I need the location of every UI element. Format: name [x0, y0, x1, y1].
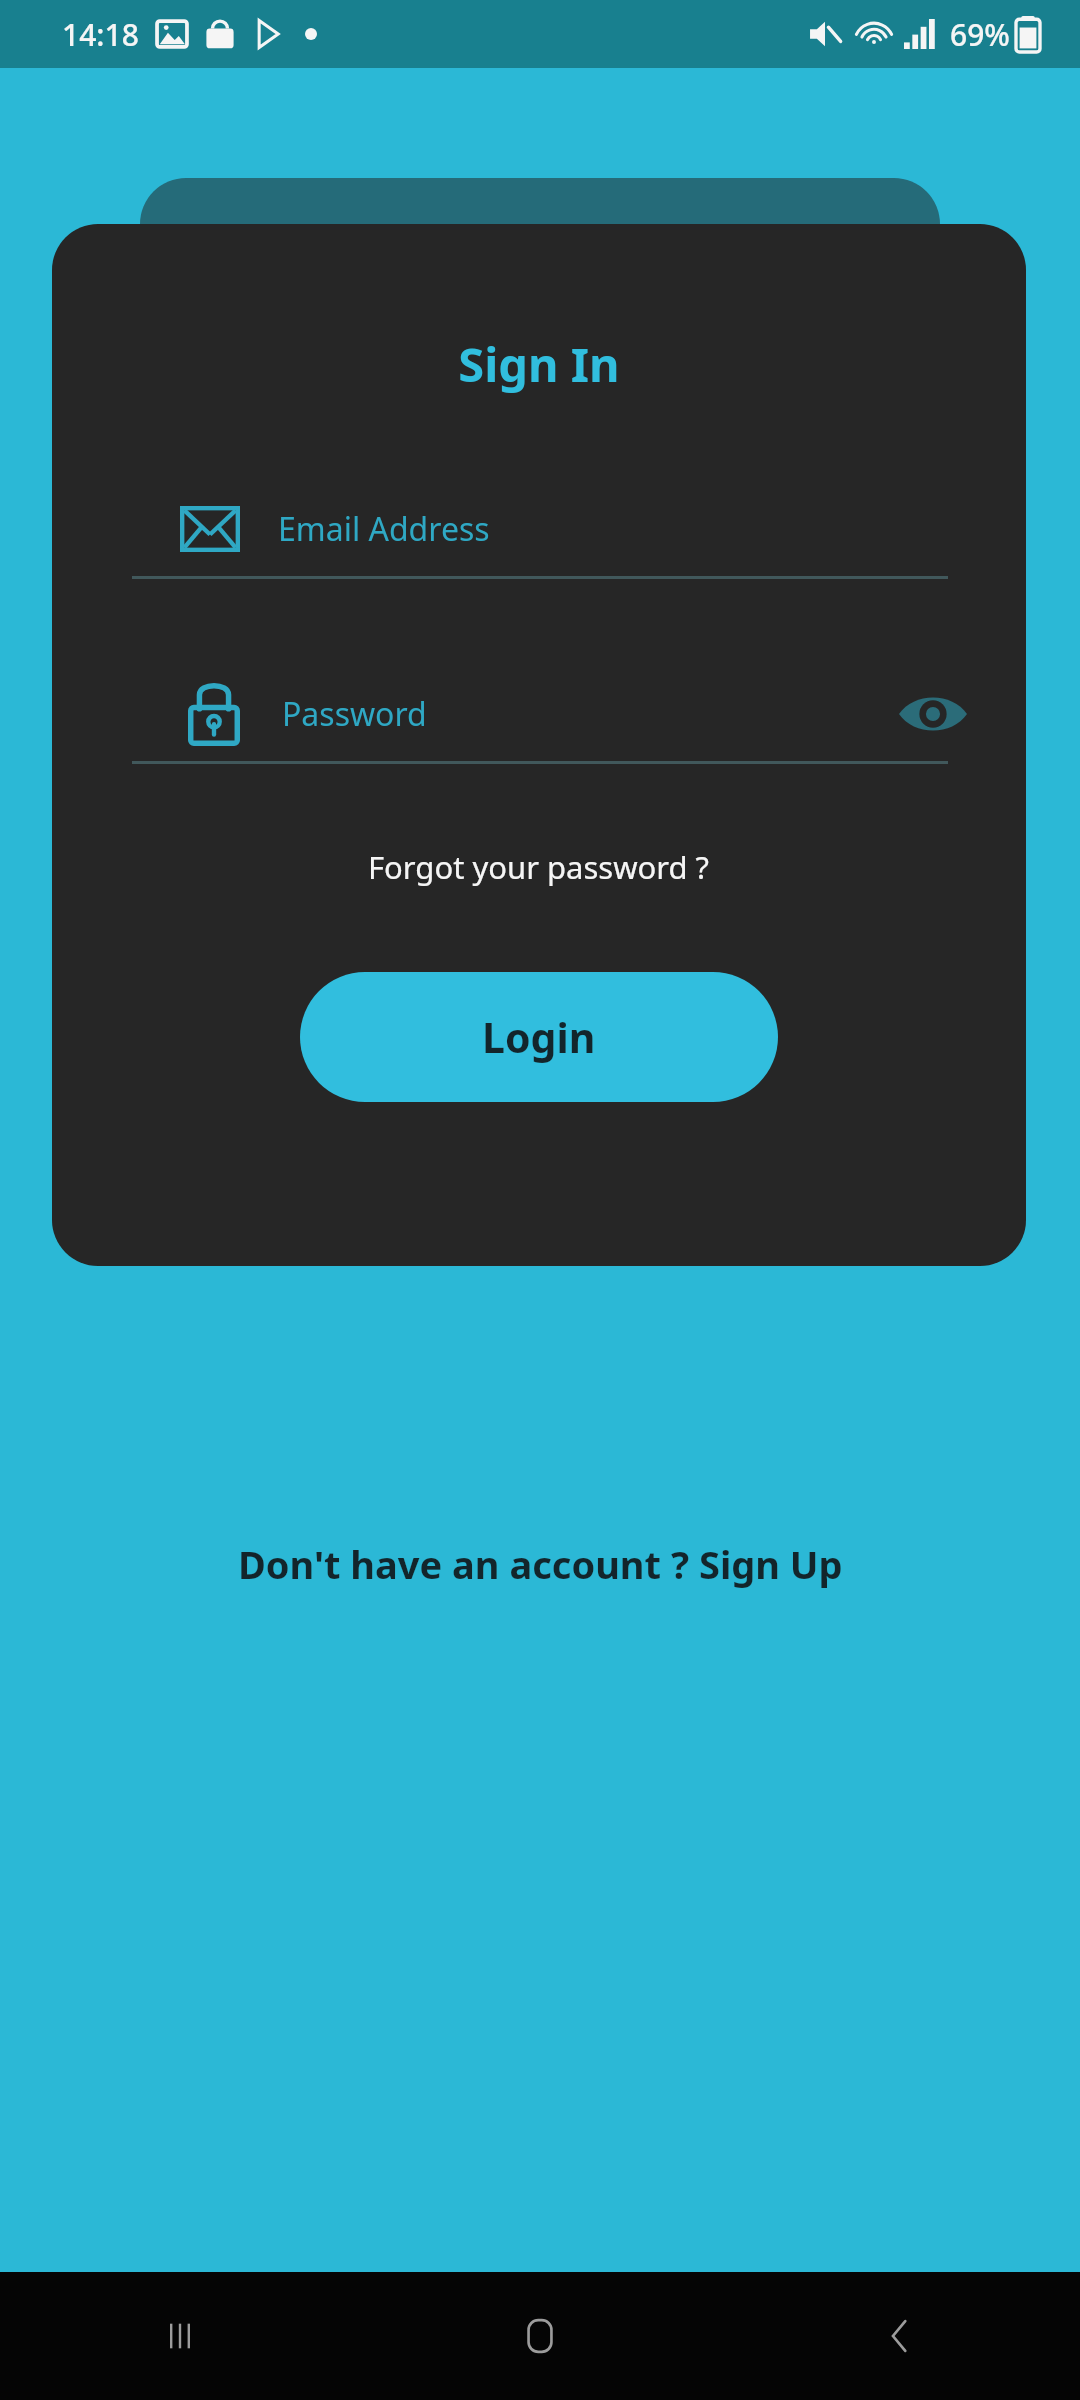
staticText: 69%	[950, 14, 1010, 55]
button[interactable]: Forgot your password ?	[52, 830, 1026, 904]
staticText: 14:18	[62, 14, 139, 55]
button[interactable]: Don't have an account ? Sign Up	[0, 1524, 1080, 1604]
staticText: Email Address	[278, 507, 490, 551]
staticText: Sign In	[52, 332, 1026, 396]
button[interactable]: Password	[52, 667, 1026, 761]
button[interactable]: Email Address	[52, 482, 1026, 576]
staticText: Forgot your password ?	[368, 846, 710, 888]
staticText: Don't have an account ? Sign Up	[238, 1538, 843, 1590]
button[interactable]: Login	[300, 972, 778, 1102]
staticText: Password	[282, 692, 427, 736]
button[interactable]: Home	[360, 2272, 720, 2400]
button[interactable]: Show password	[886, 667, 980, 761]
button[interactable]: Back	[720, 2272, 1080, 2400]
button[interactable]: Recent apps	[0, 2272, 360, 2400]
staticText: Login	[482, 1009, 596, 1065]
